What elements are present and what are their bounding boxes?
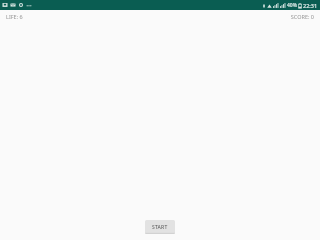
staticText: LIFE: 6 — [6, 13, 23, 20]
button[interactable]: START — [145, 220, 175, 234]
staticText: START — [152, 224, 168, 231]
staticText: 40% — [287, 2, 297, 9]
staticText: SCORE: 0 — [290, 13, 314, 20]
staticText: 22:31 — [303, 2, 318, 9]
